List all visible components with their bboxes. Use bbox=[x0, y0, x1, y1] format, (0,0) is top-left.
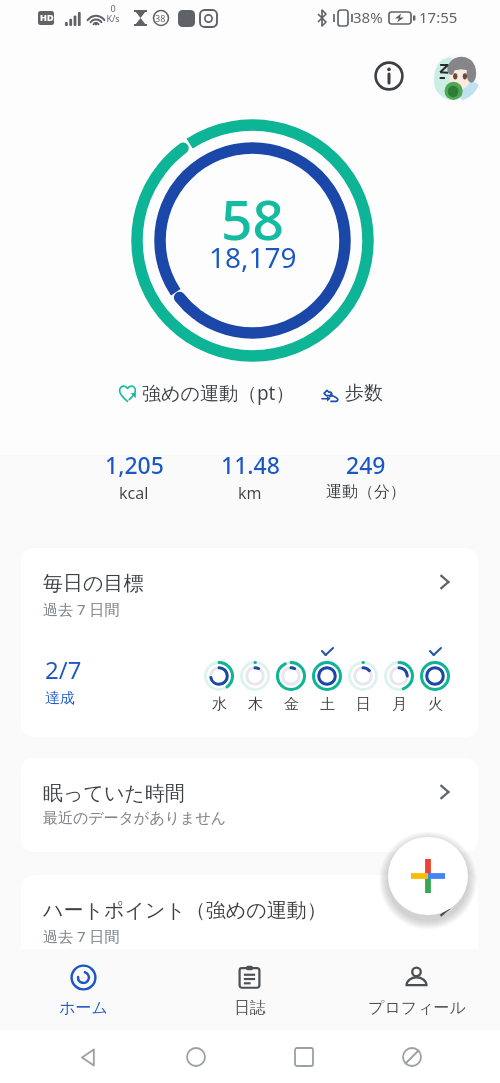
staticText: HD bbox=[40, 11, 54, 23]
staticText: 11.48 bbox=[221, 449, 280, 480]
staticText: 1,205 bbox=[105, 449, 164, 480]
staticText: 木 bbox=[248, 695, 263, 714]
staticText: km bbox=[238, 482, 262, 504]
staticText: 眠っていた時間 bbox=[43, 781, 185, 806]
button[interactable]: ハートポイント（強めの運動） bbox=[21, 875, 478, 969]
button[interactable]: Back bbox=[68, 1037, 108, 1077]
button[interactable]: Rotate bbox=[392, 1037, 432, 1077]
staticText: 強めの運動（pt） bbox=[142, 380, 295, 406]
staticText: 水 bbox=[212, 695, 227, 714]
staticText: ホーム bbox=[59, 998, 108, 1018]
staticText: ハートポイント（強めの運動） bbox=[43, 898, 327, 923]
staticText: 月 bbox=[392, 695, 407, 714]
button[interactable]: Recents bbox=[284, 1037, 324, 1077]
button[interactable]: Home bbox=[176, 1037, 216, 1077]
button[interactable]: ホーム bbox=[0, 949, 166, 1030]
staticText: 58 bbox=[221, 181, 284, 256]
staticText: 過去 7 日間 bbox=[43, 599, 120, 619]
button[interactable]: Add bbox=[388, 837, 468, 915]
staticText: kcal bbox=[119, 482, 149, 504]
staticText: 17:55 bbox=[419, 7, 458, 27]
staticText: 249 bbox=[346, 449, 386, 480]
staticText: 38 bbox=[155, 12, 166, 24]
staticText: 日 bbox=[356, 695, 371, 714]
button[interactable]: Profile bbox=[432, 53, 480, 101]
staticText: 金 bbox=[284, 695, 299, 714]
staticText: 2/7 bbox=[45, 653, 82, 686]
button[interactable]: プロフィール bbox=[333, 949, 500, 1030]
button[interactable]: 日誌 bbox=[166, 949, 333, 1030]
staticText: 達成 bbox=[45, 689, 75, 708]
staticText: 18,179 bbox=[209, 238, 297, 276]
staticText: 最近のデータがありません bbox=[43, 809, 227, 828]
button[interactable]: 毎日の目標 bbox=[21, 548, 478, 737]
button[interactable]: Info bbox=[364, 51, 414, 101]
staticText: 土 bbox=[320, 695, 335, 714]
staticText: プロフィール bbox=[368, 998, 466, 1018]
staticText: 0 K/s bbox=[106, 2, 120, 24]
staticText: 歩数 bbox=[345, 381, 383, 405]
button[interactable]: 眠っていた時間 bbox=[21, 758, 478, 852]
staticText: 運動（分） bbox=[326, 482, 406, 502]
staticText: 38% bbox=[353, 7, 383, 27]
staticText: 過去 7 日間 bbox=[43, 926, 120, 946]
staticText: 日誌 bbox=[234, 998, 266, 1018]
staticText: 毎日の目標 bbox=[43, 571, 144, 596]
staticText: 火 bbox=[428, 695, 443, 714]
